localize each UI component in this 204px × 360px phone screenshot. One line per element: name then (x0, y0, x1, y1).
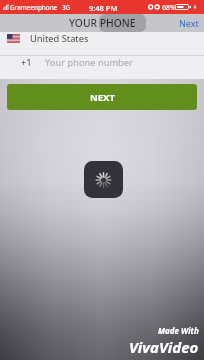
staticText: United States (30, 32, 89, 45)
staticText: YOUR PHONE (69, 16, 136, 30)
staticText: VivaVideo (129, 337, 199, 357)
staticText: +1 (21, 56, 32, 69)
staticText: 9:48 PM (89, 3, 118, 13)
staticText: Your phone number (45, 56, 133, 69)
button[interactable]: NEXT (7, 84, 197, 110)
staticText: 68% (162, 3, 176, 13)
staticText: NEXT (90, 91, 115, 104)
staticText: Grameenphone (10, 3, 58, 12)
button[interactable]: Next (179, 17, 199, 29)
button[interactable]: +1 (0, 56, 204, 79)
staticText: Next (179, 17, 199, 29)
staticText: 3G (62, 3, 71, 12)
button[interactable]: United States (0, 32, 204, 56)
staticText: Made With (158, 325, 199, 336)
